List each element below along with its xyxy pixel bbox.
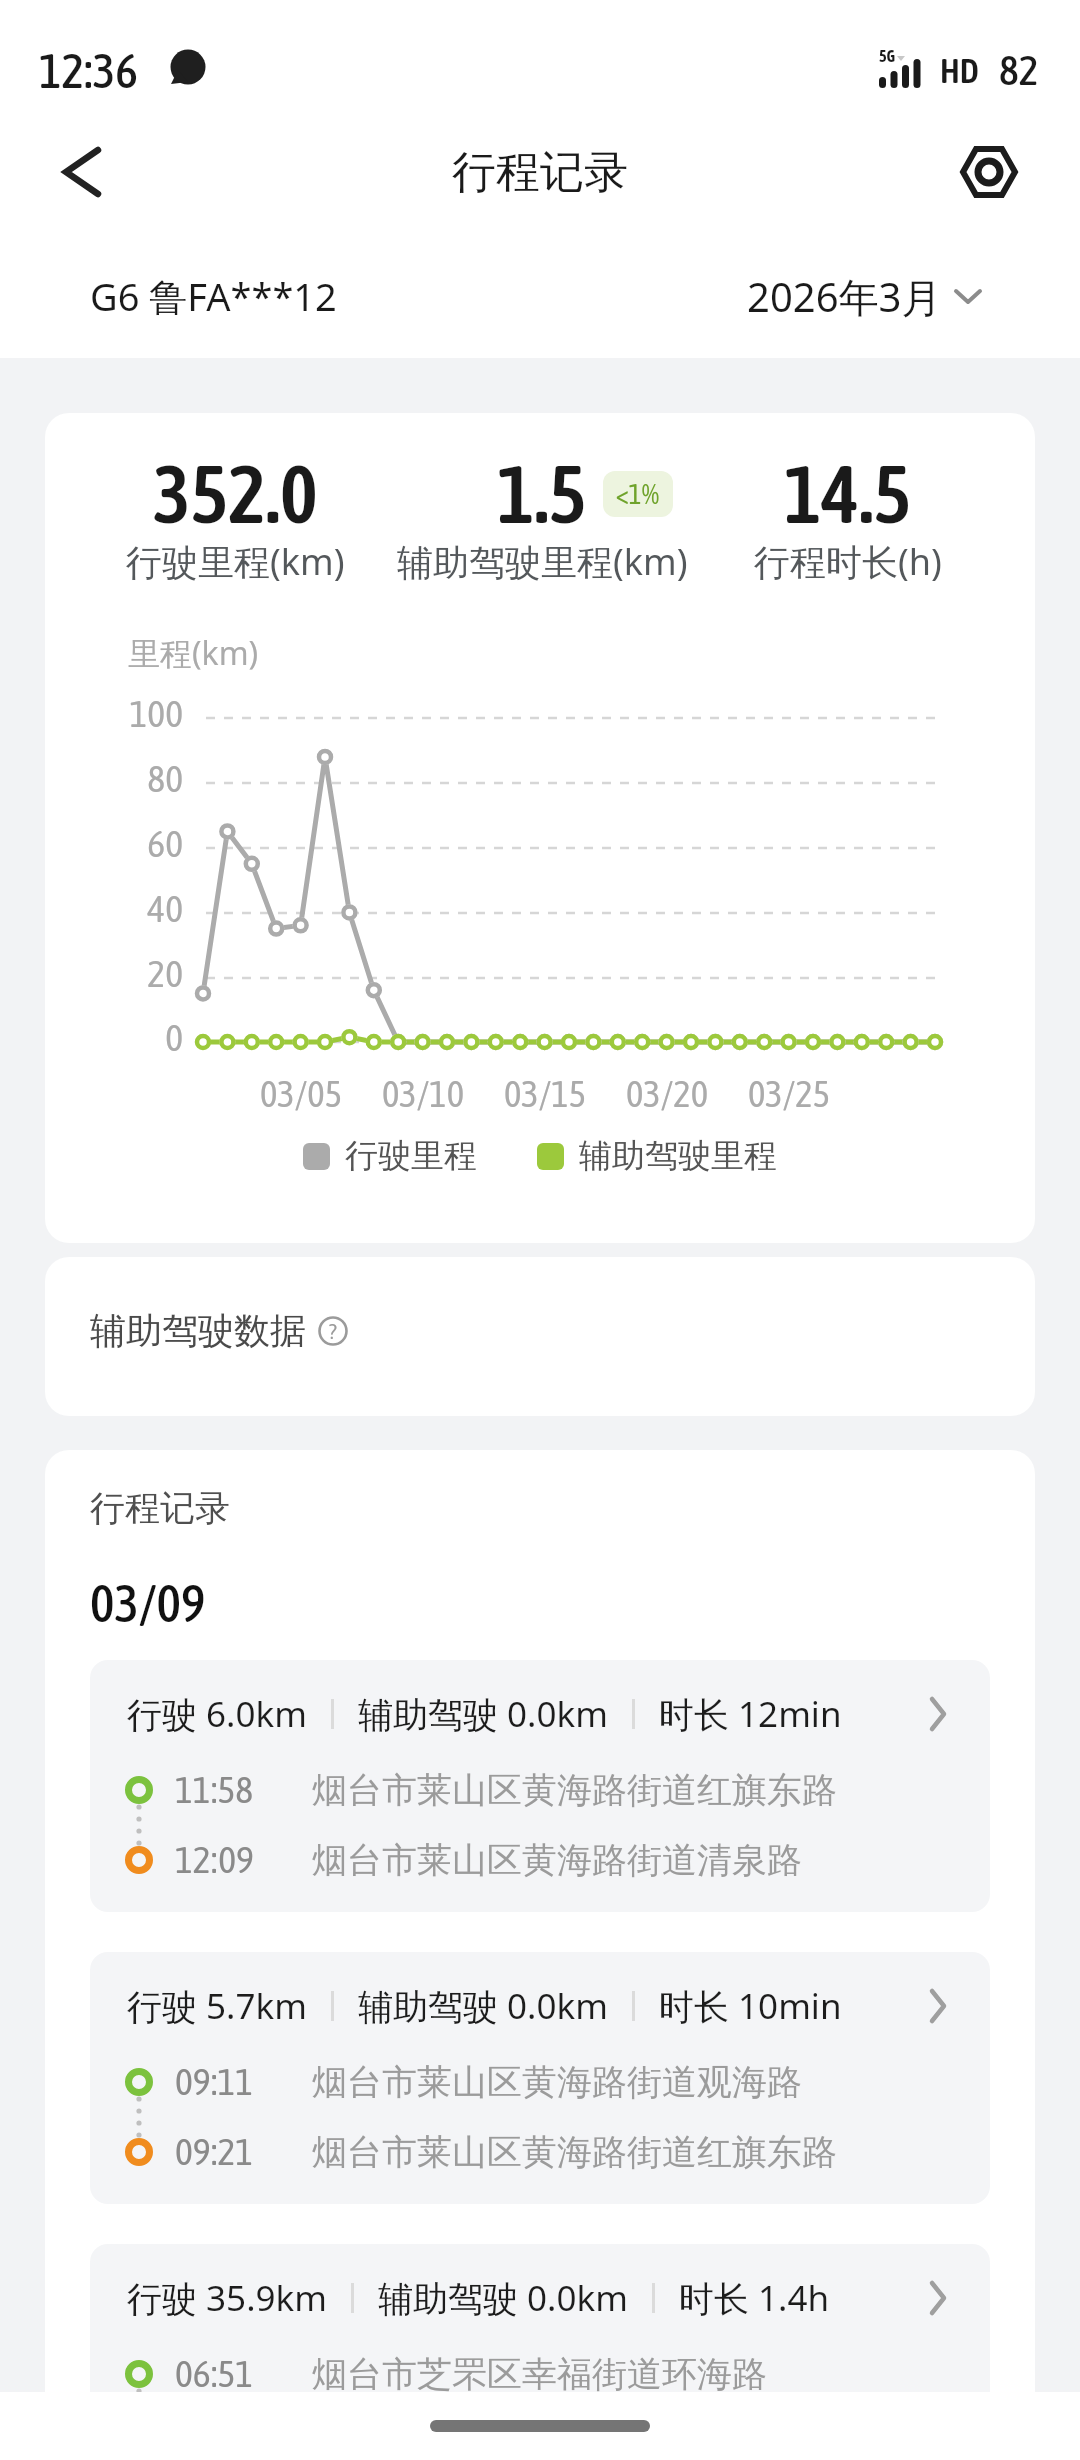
- staticText: 06:51: [175, 2352, 254, 2396]
- staticText: 辅助驾驶 0.0km: [358, 1982, 608, 2030]
- staticText: G6 鲁FA***12: [90, 270, 337, 322]
- staticText: 100: [93, 692, 183, 736]
- staticText: 时长 1.4h: [679, 2274, 830, 2322]
- button[interactable]: 行驶 6.0km: [90, 1660, 990, 1912]
- button[interactable]: [50, 140, 114, 204]
- staticText: 烟台市莱山区黄海路街道观海路: [312, 2422, 802, 2460]
- staticText: 烟台市莱山区黄海路街道清泉路: [312, 1838, 802, 1882]
- staticText: 60: [93, 822, 183, 866]
- staticText: 辅助驾驶 0.0km: [358, 1690, 608, 1738]
- staticText: 行程时长(h): [754, 537, 942, 586]
- staticText: 352.0: [153, 448, 318, 540]
- staticText: 09:21: [175, 2130, 254, 2174]
- staticText: 11:58: [175, 1768, 254, 1812]
- staticText: 80: [93, 757, 183, 801]
- staticText: 行程记录: [90, 1486, 230, 1530]
- staticText: 烟台市莱山区黄海路街道观海路: [312, 2060, 802, 2104]
- button[interactable]: 2026年3月: [747, 269, 982, 324]
- staticText: 82: [999, 46, 1039, 94]
- staticText: 行程记录: [452, 145, 628, 200]
- staticText: 12:09: [175, 1838, 254, 1882]
- staticText: 行驶里程(km): [126, 537, 345, 586]
- staticText: 辅助驾驶 0.0km: [378, 2274, 628, 2322]
- staticText: 里程(km): [128, 631, 259, 675]
- staticText: 40: [93, 887, 183, 931]
- staticText: 09:11: [175, 2060, 254, 2104]
- staticText: 烟台市芝罘区幸福街道环海路: [312, 2352, 767, 2396]
- button[interactable]: [954, 137, 1024, 207]
- staticText: 03/09: [90, 1573, 206, 1633]
- staticText: 1.5: [497, 448, 587, 540]
- staticText: 辅助驾驶数据: [90, 1308, 306, 1353]
- staticText: 03/15: [485, 1072, 605, 1114]
- button[interactable]: 辅助驾驶数据: [45, 1257, 1035, 1416]
- staticText: ?: [329, 1319, 337, 1343]
- staticText: 03/20: [607, 1072, 727, 1114]
- staticText: 2026年3月: [747, 269, 942, 324]
- staticText: 03/10: [363, 1072, 483, 1114]
- staticText: 03/05: [241, 1072, 361, 1114]
- button[interactable]: 行驶 35.9km: [90, 2244, 990, 2460]
- staticText: 14.5: [784, 448, 912, 540]
- staticText: 辅助驾驶里程: [579, 1135, 777, 1177]
- staticText: 0: [93, 1016, 183, 1060]
- staticText: <1%: [616, 478, 660, 510]
- staticText: 行驶 35.9km: [127, 2274, 327, 2322]
- staticText: 20: [93, 952, 183, 996]
- staticText: 12:36: [39, 43, 138, 98]
- staticText: HD: [940, 51, 979, 90]
- staticText: 03/25: [729, 1072, 849, 1114]
- staticText: 行驶 6.0km: [127, 1690, 307, 1738]
- staticText: 烟台市莱山区黄海路街道红旗东路: [312, 2130, 837, 2174]
- button[interactable]: 行驶 5.7km: [90, 1952, 990, 2204]
- staticText: 时长 10min: [659, 1982, 842, 2030]
- staticText: 时长 12min: [659, 1690, 842, 1738]
- staticText: 烟台市莱山区黄海路街道红旗东路: [312, 1768, 837, 1812]
- staticText: 行驶 5.7km: [127, 1982, 307, 2030]
- staticText: 辅助驾驶里程(km): [397, 537, 688, 586]
- staticText: 行驶里程: [345, 1135, 477, 1177]
- staticText: 5G: [879, 47, 896, 65]
